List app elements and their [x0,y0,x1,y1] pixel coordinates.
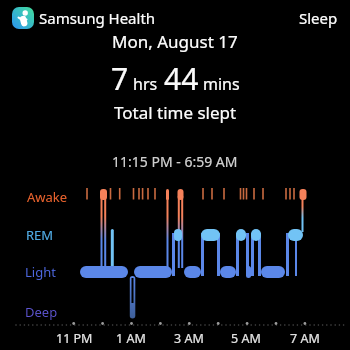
staticText: 7 [111,58,129,94]
staticText: Mon, August 17 [112,30,238,53]
staticText: 5 AM [231,330,261,347]
staticText: 11 PM [56,330,93,347]
staticText: Samsung Health [39,8,156,28]
staticText: 11:15 PM - 6:59 AM [112,152,238,171]
staticText: 1 AM [116,330,146,347]
staticText: Sleep [299,8,338,28]
button[interactable]: Samsung Health [12,7,156,29]
staticText: Awake [27,188,68,206]
staticText: 7 AM [290,330,320,347]
staticText: Total time slept [114,101,237,124]
staticText: 3 AM [174,330,204,347]
staticText: 44 [164,58,199,94]
button[interactable]: Sleep [299,8,338,28]
staticText: REM [26,226,54,244]
staticText: hrs [133,73,158,95]
staticText: Light [25,263,56,281]
staticText: Deep [25,303,58,321]
staticText: mins [203,73,240,95]
